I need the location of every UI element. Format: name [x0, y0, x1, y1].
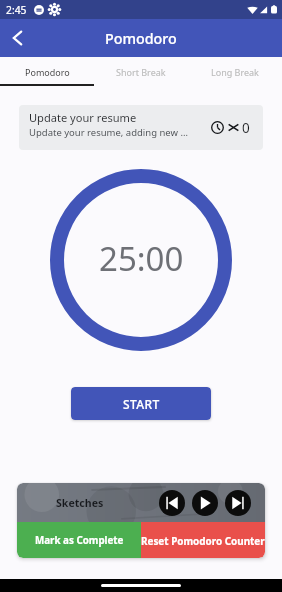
button[interactable]: Back — [1, 21, 35, 55]
staticText: Mark as Complete — [35, 534, 124, 547]
button[interactable]: Mark as Complete — [17, 522, 141, 558]
staticText: Short Break — [116, 66, 166, 78]
staticText: Update your resume, adding new … — [29, 126, 188, 139]
staticText: Long Break — [211, 66, 259, 78]
staticText: Pomodoro — [25, 66, 70, 78]
staticText: Sketches — [56, 496, 104, 510]
staticText: Reset Pomodoro Counter — [141, 534, 265, 547]
button[interactable]: Play — [192, 490, 218, 516]
staticText: 2:45 — [6, 3, 27, 17]
staticText: START — [123, 396, 160, 412]
button[interactable]: Long Break — [188, 57, 282, 86]
button[interactable]: Next — [225, 490, 251, 516]
staticText: Pomodoro — [105, 29, 177, 48]
button[interactable]: Update your resume — [19, 105, 263, 150]
staticText: 25:00 — [99, 236, 184, 281]
staticText: 0 — [242, 119, 250, 137]
button[interactable]: Previous — [159, 490, 185, 516]
button[interactable]: START — [71, 387, 211, 420]
staticText: Update your resume — [29, 110, 137, 125]
button[interactable]: Pomodoro — [0, 57, 94, 86]
button[interactable]: Reset Pomodoro Counter — [141, 522, 265, 558]
button[interactable]: Short Break — [94, 57, 188, 86]
